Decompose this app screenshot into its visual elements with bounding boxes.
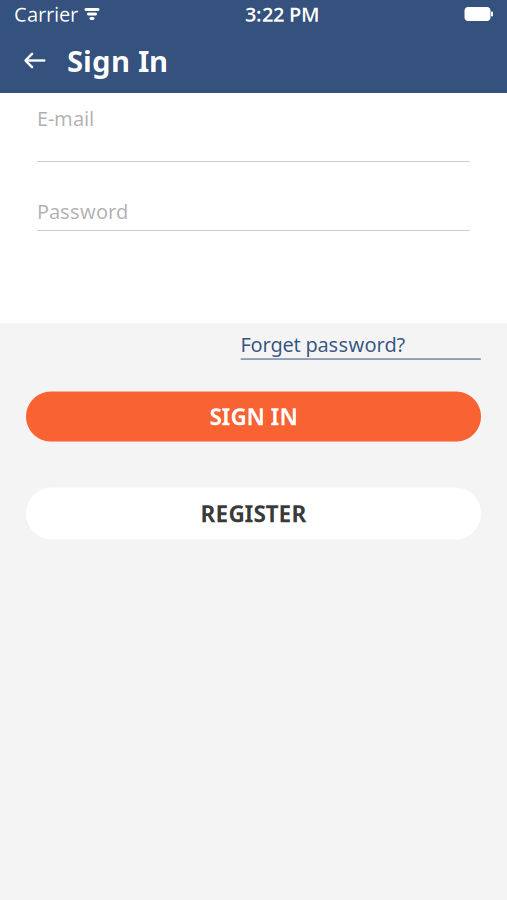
staticText: 3:22 PM	[245, 1, 320, 27]
staticText: E-mail	[37, 105, 94, 132]
staticText: Carrier	[14, 1, 78, 27]
button[interactable]: Back	[13, 38, 57, 82]
button[interactable]: SIGN IN	[26, 392, 481, 442]
staticText: Forget password?	[240, 331, 405, 358]
staticText: SIGN IN	[209, 401, 297, 432]
staticText: Sign In	[67, 41, 168, 80]
button[interactable]: Forget password?	[240, 331, 481, 360]
button[interactable]: REGISTER	[26, 488, 481, 540]
staticText: REGISTER	[200, 498, 306, 529]
staticText: Password	[37, 198, 128, 225]
